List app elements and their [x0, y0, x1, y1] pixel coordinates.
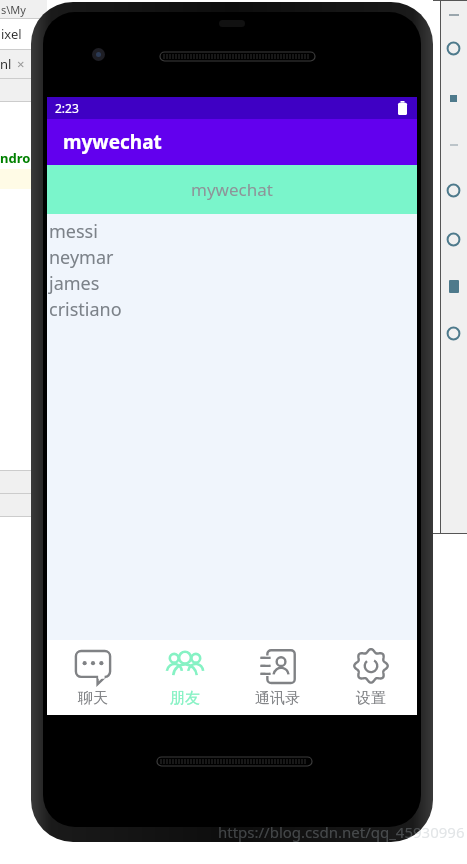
staticText: ndro	[0, 149, 31, 167]
button[interactable]: cristiano	[47, 296, 417, 322]
staticText: ixel	[1, 25, 22, 43]
staticText: mywechat	[191, 178, 273, 201]
staticText: neymar	[49, 245, 114, 270]
staticText: 聊天	[78, 689, 108, 708]
button[interactable]: messi	[47, 218, 417, 244]
button[interactable]: 设置	[324, 640, 417, 715]
staticText: messi	[49, 219, 98, 244]
staticText: 朋友	[170, 689, 200, 708]
button[interactable]: 通讯录	[231, 640, 324, 715]
staticText: mywechat	[63, 129, 162, 155]
staticText: s\My	[1, 2, 26, 17]
staticText: https://blog.csdn.net/qq_45930996	[218, 822, 465, 842]
staticText: 设置	[356, 689, 386, 708]
staticText: ×	[17, 55, 25, 73]
button[interactable]: james	[47, 270, 417, 296]
button[interactable]: 朋友	[139, 640, 231, 715]
staticText: 通讯录	[255, 689, 300, 708]
button[interactable]: neymar	[47, 244, 417, 270]
staticText: cristiano	[49, 297, 122, 322]
staticText: 2:23	[55, 100, 79, 116]
staticText: james	[49, 271, 100, 296]
button[interactable]: mywechat	[47, 165, 417, 214]
button[interactable]: 聊天	[47, 640, 139, 715]
staticText: nl	[0, 55, 12, 73]
